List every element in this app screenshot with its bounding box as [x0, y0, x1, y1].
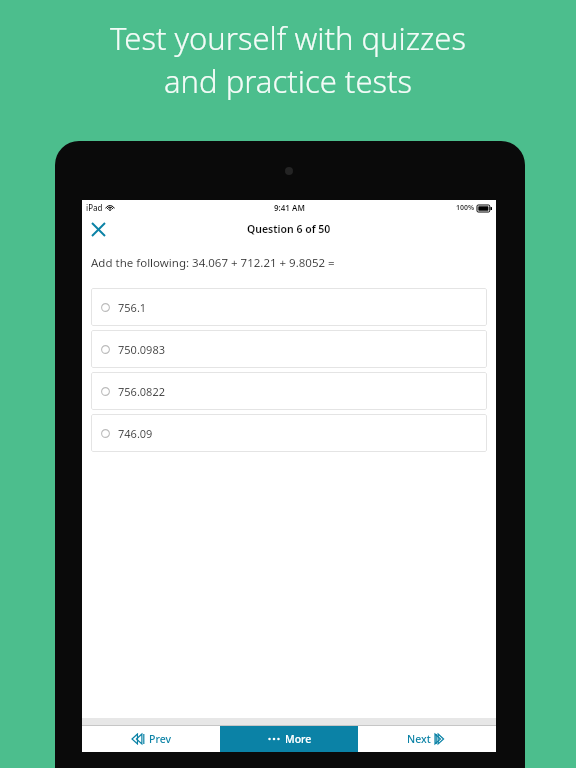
button[interactable]: Next: [358, 726, 496, 752]
staticText: 756.1: [118, 300, 147, 315]
button[interactable]: 746.09: [91, 414, 487, 452]
staticText: Next: [407, 732, 431, 746]
button[interactable]: 756.0822: [91, 372, 487, 410]
staticText: Prev: [149, 732, 171, 746]
staticText: 746.09: [118, 426, 153, 441]
staticText: Add the following: 34.067 + 712.21 + 9.8…: [91, 255, 335, 271]
button[interactable]: Close quiz: [86, 217, 110, 241]
staticText: More: [285, 732, 312, 746]
staticText: Test yourself with quizzes and practice …: [110, 17, 466, 102]
staticText: iPad: [86, 202, 103, 213]
button[interactable]: More: [220, 726, 358, 752]
staticText: 100%: [456, 203, 475, 213]
button[interactable]: Prev: [82, 726, 220, 752]
button[interactable]: 750.0983: [91, 330, 487, 368]
staticText: 9:41 AM: [274, 202, 305, 213]
staticText: 756.0822: [118, 384, 165, 399]
button[interactable]: 756.1: [91, 288, 487, 326]
staticText: 750.0983: [118, 342, 165, 357]
staticText: Question 6 of 50: [247, 222, 331, 236]
